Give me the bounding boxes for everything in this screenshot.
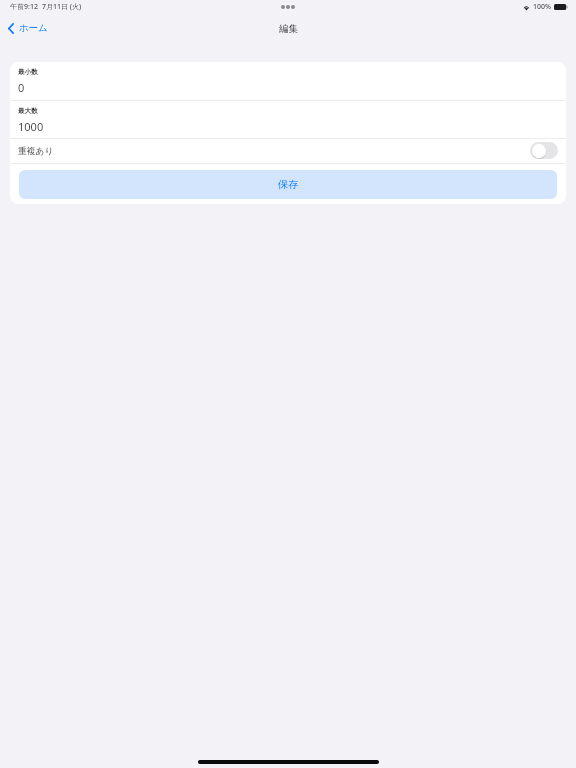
- staticText: 0: [18, 80, 25, 95]
- button[interactable]: 重複あり: [10, 139, 566, 163]
- button[interactable]: 保存: [19, 170, 557, 199]
- button[interactable]: 最小数: [10, 62, 566, 100]
- staticText: 1000: [18, 119, 44, 134]
- staticText: 100%: [533, 2, 551, 12]
- button[interactable]: 重複ありスイッチ: [530, 142, 558, 159]
- staticText: 最小数: [18, 68, 38, 76]
- staticText: 編集: [279, 23, 299, 35]
- staticText: 最大数: [18, 107, 38, 115]
- staticText: 重複あり: [18, 146, 54, 157]
- staticText: 保存: [278, 178, 299, 191]
- staticText: 午前9:12: [10, 2, 38, 12]
- staticText: 7月11日 (火): [42, 2, 82, 12]
- staticText: ホーム: [19, 22, 48, 34]
- button[interactable]: ホームに戻る: [0, 18, 58, 38]
- button[interactable]: 最大数: [10, 101, 566, 138]
